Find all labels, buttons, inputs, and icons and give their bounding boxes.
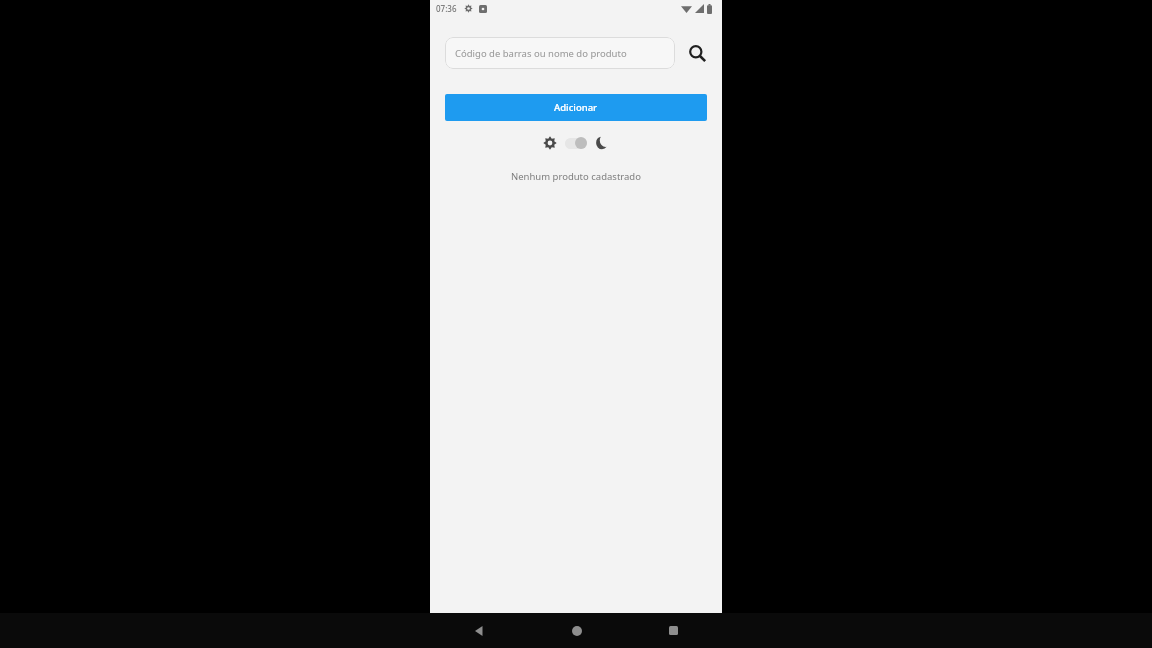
button[interactable]: Adicionar [445,94,707,121]
staticText: Código de barras ou nome do produto [455,47,627,60]
button[interactable]: Tema claro [540,133,560,153]
button[interactable]: Recentes [625,613,722,648]
staticText: Nenhum produto cadastrado [430,170,722,183]
staticText: 07:36 [436,3,457,14]
button[interactable]: Pesquisar [684,40,710,66]
button[interactable]: Tema escuro [592,133,612,153]
button[interactable]: Início [528,613,625,648]
button[interactable]: Voltar [430,613,528,648]
button[interactable]: Alternar tema [564,136,588,150]
button[interactable]: Código de barras ou nome do produto [445,37,675,69]
staticText: Adicionar [554,101,598,114]
